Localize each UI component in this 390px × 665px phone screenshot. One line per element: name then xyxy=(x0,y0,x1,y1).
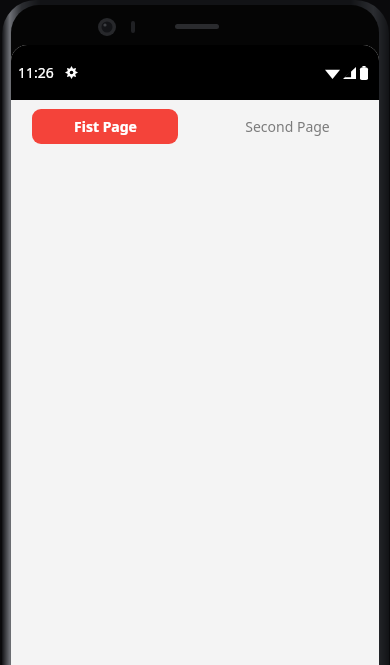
button[interactable]: Fist Page xyxy=(32,109,178,144)
button[interactable]: Second Page xyxy=(214,109,360,144)
staticText: Second Page xyxy=(245,117,330,136)
staticText: 11:26 xyxy=(18,63,54,82)
staticText: Fist Page xyxy=(74,117,137,136)
